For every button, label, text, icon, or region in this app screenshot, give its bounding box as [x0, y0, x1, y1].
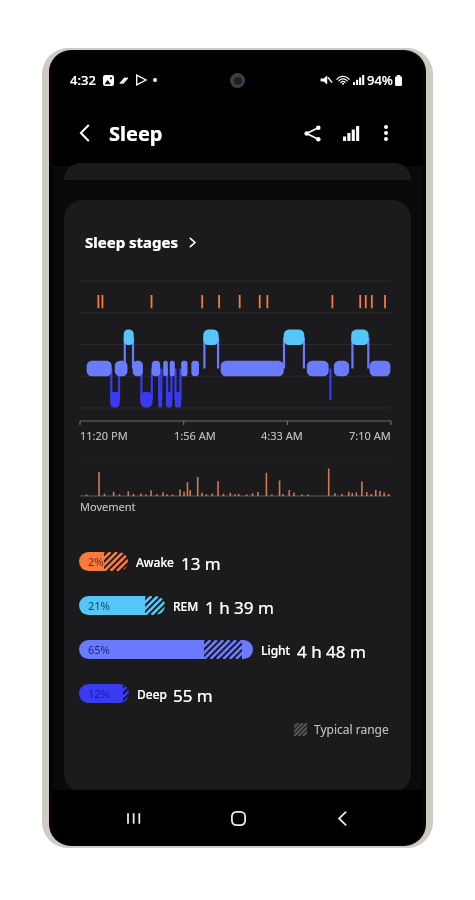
staticText: 13 m — [181, 552, 221, 571]
staticText: Deep — [137, 686, 167, 702]
staticText: Sleep — [109, 120, 163, 147]
staticText: Sleep stages — [85, 232, 179, 252]
button[interactable]: Share — [293, 114, 331, 152]
staticText: 12% — [88, 686, 110, 701]
staticText: 4:32 — [70, 71, 96, 89]
staticText: 21% — [88, 598, 110, 613]
button[interactable]: Statistics — [332, 114, 370, 152]
staticText: Awake — [136, 554, 175, 570]
staticText: Typical range — [314, 721, 389, 737]
staticText: 1 h 39 m — [205, 596, 274, 615]
staticText: 11:20 PM — [80, 428, 128, 443]
staticText: 2% — [88, 554, 104, 569]
staticText: Light — [261, 642, 291, 658]
button[interactable]: Sleep stages — [85, 232, 198, 252]
button[interactable]: Recents — [109, 794, 157, 842]
button[interactable]: More options — [371, 118, 401, 148]
button[interactable]: Home — [214, 794, 262, 842]
staticText: 7:10 AM — [349, 428, 391, 443]
staticText: 94% — [367, 71, 393, 89]
button[interactable]: Navigate up — [65, 113, 105, 153]
staticText: 4:33 AM — [261, 428, 303, 443]
staticText: 1:56 AM — [174, 428, 216, 443]
staticText: 65% — [88, 642, 110, 657]
button[interactable]: Back — [318, 794, 366, 842]
staticText: 4 h 48 m — [297, 640, 366, 659]
staticText: REM — [173, 598, 199, 614]
staticText: Movement — [80, 499, 136, 514]
staticText: 55 m — [173, 684, 213, 703]
